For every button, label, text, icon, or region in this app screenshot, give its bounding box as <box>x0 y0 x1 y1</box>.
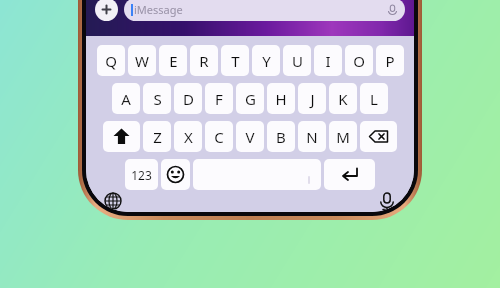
staticText: M <box>336 127 350 147</box>
staticText: V <box>245 127 255 147</box>
staticText: Q <box>105 51 117 71</box>
button[interactable]: V <box>236 121 264 152</box>
staticText: H <box>275 89 287 109</box>
button[interactable]: H <box>267 83 295 114</box>
button[interactable]: P <box>376 45 404 76</box>
button[interactable]: B <box>267 121 295 152</box>
staticText: A <box>121 89 131 109</box>
staticText: U <box>292 51 303 71</box>
button[interactable]: U <box>283 45 311 76</box>
button[interactable]: G <box>236 83 264 114</box>
button[interactable]: iMessage <box>124 0 405 21</box>
staticText: iMessage <box>134 2 183 17</box>
staticText: D <box>183 89 194 109</box>
button[interactable]: I <box>314 45 342 76</box>
button[interactable]: C <box>205 121 233 152</box>
button[interactable]: E <box>159 45 187 76</box>
other: Record audio message <box>387 4 398 15</box>
button[interactable]: Backspace <box>360 121 397 152</box>
button[interactable]: X <box>174 121 202 152</box>
button[interactable]: Emoji <box>161 159 190 190</box>
button[interactable]: M <box>329 121 357 152</box>
staticText: N <box>306 127 318 147</box>
staticText: R <box>199 51 209 71</box>
button[interactable]: F <box>205 83 233 114</box>
button[interactable]: T <box>221 45 249 76</box>
button[interactable]: Y <box>252 45 280 76</box>
staticText: G <box>245 89 256 109</box>
button[interactable]: L <box>360 83 388 114</box>
button[interactable]: Dictate <box>374 190 400 212</box>
button[interactable]: D <box>174 83 202 114</box>
staticText: F <box>215 89 223 109</box>
button[interactable]: Space <box>193 159 321 190</box>
staticText: S <box>153 89 162 109</box>
staticText: Y <box>262 51 271 71</box>
button[interactable]: Change keyboard language <box>100 190 126 212</box>
button[interactable]: Q <box>97 45 125 76</box>
button[interactable]: J <box>298 83 326 114</box>
staticText: C <box>214 127 224 147</box>
staticText: Z <box>153 127 162 147</box>
staticText: B <box>276 127 286 147</box>
staticText: X <box>184 127 193 147</box>
staticText: T <box>231 51 240 71</box>
button[interactable]: Z <box>143 121 171 152</box>
staticText: O <box>353 51 365 71</box>
button[interactable]: S <box>143 83 171 114</box>
button[interactable]: K <box>329 83 357 114</box>
button[interactable]: Add attachment <box>95 0 118 21</box>
button[interactable]: Return <box>324 159 375 190</box>
button[interactable]: 123 <box>125 159 158 190</box>
staticText: W <box>135 51 149 71</box>
button[interactable]: A <box>112 83 140 114</box>
button[interactable]: N <box>298 121 326 152</box>
staticText: L <box>370 89 378 109</box>
button[interactable]: O <box>345 45 373 76</box>
staticText: 123 <box>131 167 152 183</box>
staticText: J <box>310 89 315 109</box>
button[interactable]: Shift <box>103 121 140 152</box>
button[interactable]: W <box>128 45 156 76</box>
staticText: K <box>338 89 348 109</box>
staticText: E <box>169 51 178 71</box>
button[interactable]: R <box>190 45 218 76</box>
staticText: I <box>325 51 331 71</box>
staticText: P <box>385 51 395 71</box>
